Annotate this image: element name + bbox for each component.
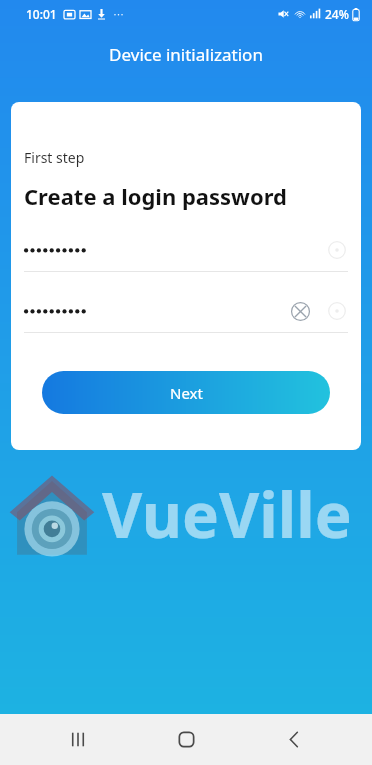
button[interactable]: Clear xyxy=(289,300,311,322)
staticText: VueVille xyxy=(102,472,352,556)
button[interactable]: Back xyxy=(264,714,324,765)
staticText: Create a login password xyxy=(24,181,287,211)
button[interactable]: Show password xyxy=(326,239,348,261)
button[interactable]: Recent apps xyxy=(48,714,108,765)
staticText: First step xyxy=(24,148,85,167)
staticText: 10:01 xyxy=(26,6,57,22)
staticText: Next xyxy=(170,383,203,403)
button[interactable]: Home xyxy=(156,714,216,765)
button[interactable]: Show password xyxy=(326,300,348,322)
staticText: 24% xyxy=(325,6,349,22)
staticText: Device initialization xyxy=(109,43,263,66)
button[interactable]: Next xyxy=(42,371,330,414)
